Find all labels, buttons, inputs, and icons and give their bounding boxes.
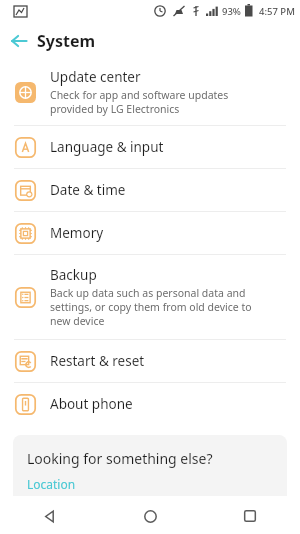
staticText: System [37, 30, 96, 52]
staticText: Backup [50, 266, 97, 284]
button[interactable]: Restart & reset [0, 340, 300, 382]
button[interactable]: Home [100, 498, 200, 534]
staticText: Memory [50, 224, 104, 242]
button[interactable]: Language & input [0, 126, 300, 168]
staticText: Check for app and software updates provi… [50, 88, 229, 116]
staticText: Location [27, 476, 76, 492]
staticText: Back up data such as personal data and s… [50, 286, 252, 328]
staticText: 4:57 PM [259, 5, 295, 18]
staticText: 93% [222, 5, 241, 18]
button[interactable]: Back [0, 498, 100, 534]
staticText: About phone [50, 395, 133, 413]
button[interactable]: Backup [0, 255, 300, 339]
staticText: Restart & reset [50, 352, 145, 370]
button[interactable]: Recent apps [200, 498, 300, 534]
staticText: Looking for something else? [27, 449, 213, 468]
button[interactable]: Update center [0, 59, 300, 125]
button[interactable]: Memory [0, 212, 300, 254]
button[interactable]: Back [0, 22, 37, 59]
button[interactable]: Looking for something else? [13, 435, 287, 496]
staticText: Language & input [50, 138, 164, 156]
staticText: Date & time [50, 181, 126, 199]
button[interactable]: Date & time [0, 169, 300, 211]
button[interactable]: About phone [0, 383, 300, 425]
staticText: Update center [50, 68, 141, 86]
